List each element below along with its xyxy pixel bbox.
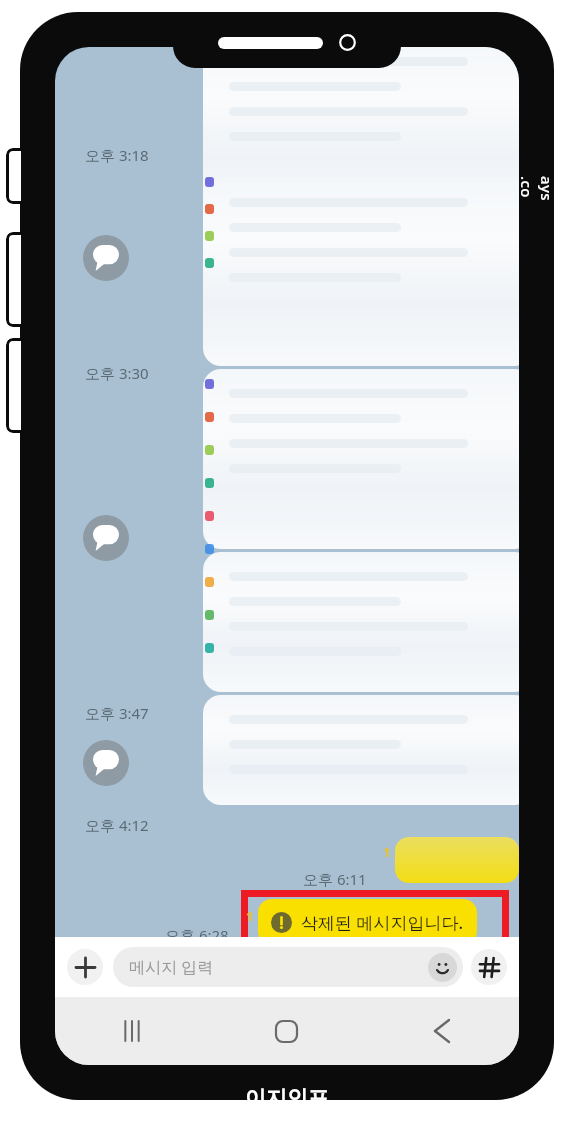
button[interactable] [203,47,519,217]
button[interactable]: Profile [83,515,129,561]
button[interactable]: Recents [55,997,209,1065]
staticText: 오후 3:47 [85,703,149,723]
button[interactable]: Back [364,997,519,1065]
staticText: 1 [246,907,254,925]
button[interactable]: Home [209,997,364,1065]
button[interactable] [395,837,519,883]
button[interactable] [203,695,519,805]
staticText: 오후 3:18 [85,145,149,165]
staticText: 오후 4:12 [85,815,149,835]
staticText: 이지인포 [245,1085,329,1111]
staticText: 삭제된 메시지입니다. [301,911,464,934]
button[interactable]: 메시지 입력 [113,947,463,987]
button[interactable]: Profile [83,740,129,786]
button[interactable] [203,552,519,692]
button[interactable]: 삭제된 메시지입니다. [258,899,477,945]
button[interactable]: Shortcuts [471,949,507,985]
button[interactable]: Profile [83,235,129,281]
button[interactable] [203,369,519,549]
button[interactable]: Add attachment [67,949,103,985]
staticText: 1 [383,843,391,861]
staticText: 오후 6:28 [165,925,229,945]
button[interactable]: Emoji [428,953,457,982]
staticText: 메시지 입력 [129,956,428,978]
staticText: 오후 3:30 [85,363,149,383]
button[interactable] [203,178,519,366]
staticText: 오후 6:11 [303,869,367,889]
staticText: ei.reidays.com [497,176,574,204]
